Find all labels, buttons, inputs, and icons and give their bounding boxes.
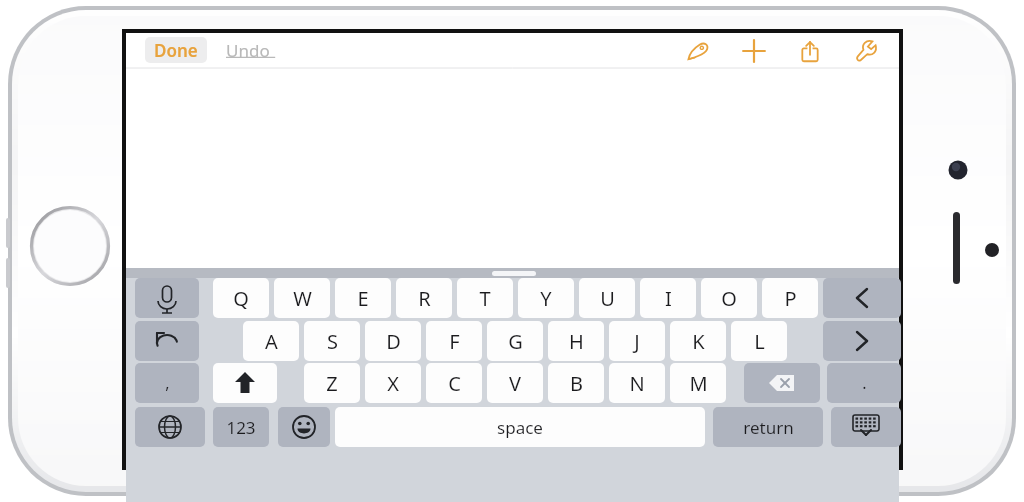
button[interactable]: W bbox=[274, 278, 330, 318]
button[interactable]: X bbox=[365, 363, 421, 403]
button[interactable]: Add bbox=[738, 35, 770, 67]
staticText: F bbox=[449, 328, 460, 355]
button[interactable]: Share bbox=[794, 35, 826, 67]
button[interactable]: undo bbox=[135, 321, 199, 361]
button[interactable]: P bbox=[762, 278, 818, 318]
button[interactable]: J bbox=[609, 321, 665, 361]
button[interactable]: keyboard bbox=[831, 407, 901, 447]
button[interactable]: 123 bbox=[213, 407, 269, 447]
button[interactable]: Markup bbox=[682, 35, 714, 67]
button[interactable]: Undo bbox=[226, 37, 286, 63]
button[interactable]: I bbox=[640, 278, 696, 318]
button[interactable]: Q bbox=[213, 278, 269, 318]
staticText: P bbox=[784, 285, 797, 312]
button[interactable]: G bbox=[487, 321, 543, 361]
staticText: T bbox=[479, 285, 491, 312]
staticText: 123 bbox=[226, 416, 256, 439]
button[interactable]: K bbox=[670, 321, 726, 361]
staticText: V bbox=[509, 370, 521, 397]
button[interactable]: B bbox=[548, 363, 604, 403]
staticText: E bbox=[357, 285, 369, 312]
staticText: return bbox=[743, 416, 794, 439]
button[interactable]: globe bbox=[135, 407, 205, 447]
staticText: Done bbox=[154, 39, 198, 62]
button[interactable]: . bbox=[827, 363, 901, 403]
button[interactable]: space bbox=[335, 407, 705, 447]
button[interactable]: C bbox=[426, 363, 482, 403]
button[interactable]: Settings bbox=[850, 35, 882, 67]
button[interactable]: S bbox=[304, 321, 360, 361]
button[interactable]: shift bbox=[213, 363, 277, 403]
button[interactable]: H bbox=[548, 321, 604, 361]
button[interactable]: M bbox=[670, 363, 726, 403]
staticText: , bbox=[165, 372, 170, 394]
staticText: L bbox=[754, 328, 765, 355]
staticText: M bbox=[689, 370, 708, 397]
button[interactable]: Done bbox=[145, 37, 207, 63]
button[interactable]: N bbox=[609, 363, 665, 403]
button[interactable]: E bbox=[335, 278, 391, 318]
staticText: Y bbox=[540, 285, 552, 312]
button[interactable]: bksp bbox=[744, 363, 820, 403]
button[interactable]: R bbox=[396, 278, 452, 318]
staticText: R bbox=[418, 285, 431, 312]
staticText: I bbox=[665, 285, 672, 312]
button[interactable]: mic bbox=[135, 278, 199, 318]
button[interactable]: V bbox=[487, 363, 543, 403]
button[interactable] bbox=[492, 271, 536, 276]
button[interactable]: U bbox=[579, 278, 635, 318]
button[interactable]: F bbox=[426, 321, 482, 361]
staticText: W bbox=[293, 285, 312, 312]
button[interactable]: chevR bbox=[823, 321, 901, 361]
button[interactable]: chevL bbox=[823, 278, 901, 318]
staticText: K bbox=[692, 328, 705, 355]
staticText: D bbox=[386, 328, 401, 355]
staticText: C bbox=[448, 370, 461, 397]
staticText: H bbox=[569, 328, 584, 355]
staticText: A bbox=[265, 328, 278, 355]
button[interactable]: A bbox=[243, 321, 299, 361]
staticText: . bbox=[862, 372, 867, 394]
button[interactable]: O bbox=[701, 278, 757, 318]
button[interactable]: D bbox=[365, 321, 421, 361]
staticText: U bbox=[600, 285, 615, 312]
staticText: S bbox=[327, 328, 338, 355]
button[interactable]: emoji bbox=[278, 407, 330, 447]
staticText: X bbox=[387, 370, 399, 397]
button[interactable]: L bbox=[731, 321, 787, 361]
staticText: space bbox=[497, 416, 543, 439]
button[interactable]: T bbox=[457, 278, 513, 318]
staticText: Undo bbox=[226, 39, 270, 62]
button[interactable]: Z bbox=[304, 363, 360, 403]
staticText: O bbox=[721, 285, 737, 312]
button[interactable]: , bbox=[135, 363, 199, 403]
button[interactable]: Y bbox=[518, 278, 574, 318]
staticText: B bbox=[570, 370, 583, 397]
staticText: J bbox=[634, 328, 640, 355]
staticText: G bbox=[508, 328, 523, 355]
button[interactable]: return bbox=[713, 407, 823, 447]
staticText: N bbox=[629, 370, 645, 397]
staticText: Z bbox=[326, 370, 338, 397]
staticText: Q bbox=[233, 285, 249, 312]
